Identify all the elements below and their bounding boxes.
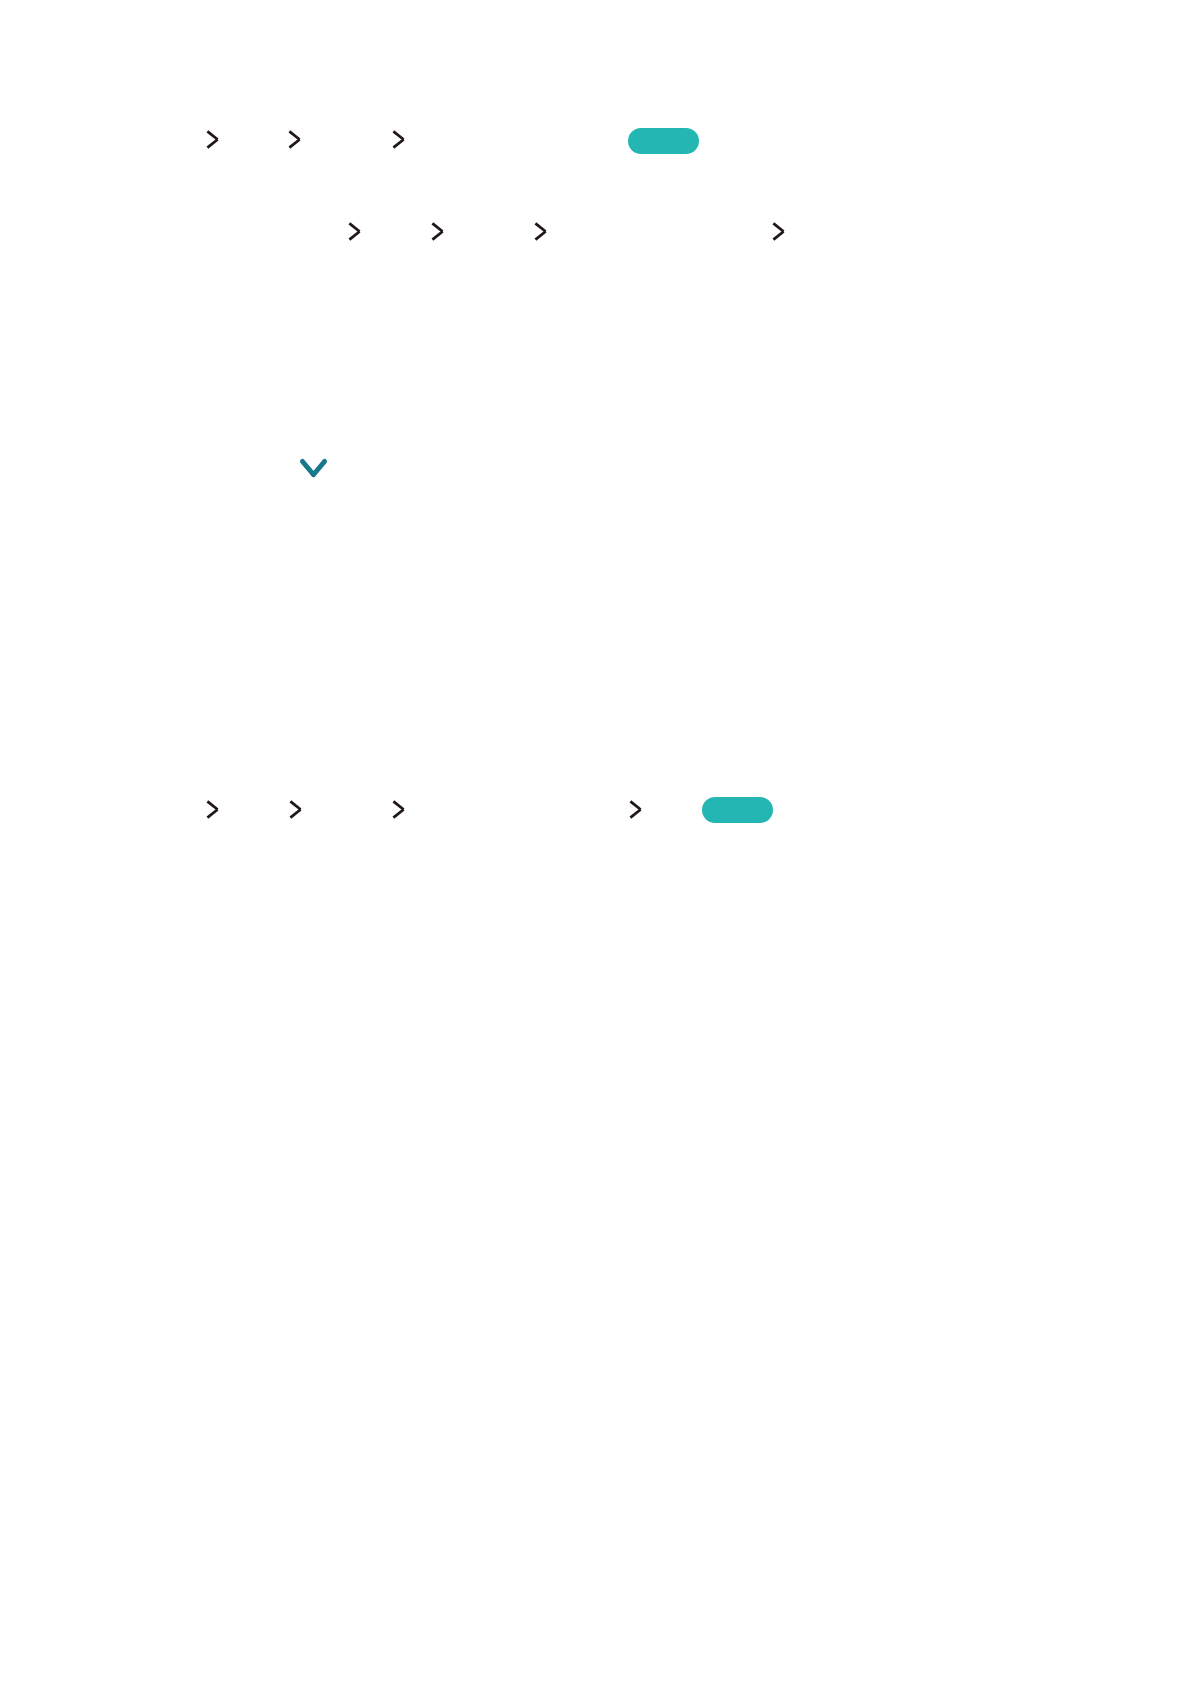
- button[interactable]: Next: [629, 800, 642, 819]
- button[interactable]: Home: [206, 800, 219, 819]
- button[interactable]: More filters: [772, 222, 785, 241]
- button[interactable]: Category: [288, 130, 301, 149]
- button[interactable]: Primary action: [628, 128, 699, 154]
- button[interactable]: Subcategory: [392, 800, 405, 819]
- button[interactable]: Category: [289, 800, 302, 819]
- button[interactable]: Filter three: [534, 222, 547, 241]
- button[interactable]: Expand section: [292, 448, 335, 487]
- button[interactable]: Filter two: [431, 222, 444, 241]
- button[interactable]: Home: [206, 130, 219, 149]
- button[interactable]: Filter one: [348, 222, 361, 241]
- button[interactable]: Secondary action: [702, 797, 773, 823]
- button[interactable]: Subcategory: [392, 130, 405, 149]
